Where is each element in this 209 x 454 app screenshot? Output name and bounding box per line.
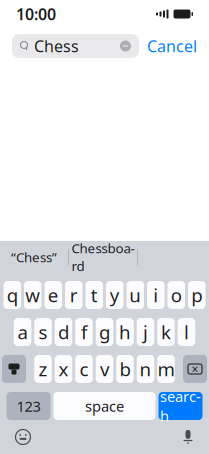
- button[interactable]: o: [167, 281, 185, 309]
- button[interactable]: i: [147, 281, 164, 309]
- button[interactable]: 123: [6, 392, 50, 420]
- button[interactable]: b: [116, 355, 134, 383]
- button[interactable]: k: [157, 318, 175, 346]
- button[interactable]: Emoji: [14, 428, 32, 446]
- staticText: Chess: [34, 35, 79, 57]
- button[interactable]: t: [85, 281, 103, 309]
- button[interactable]: l: [178, 318, 195, 346]
- button[interactable]: space: [53, 392, 155, 420]
- button[interactable]: a: [14, 318, 31, 346]
- button[interactable]: g: [96, 318, 113, 346]
- button[interactable]: z: [34, 355, 52, 383]
- staticText: y: [110, 283, 120, 307]
- staticText: Cancel: [147, 35, 197, 57]
- staticText: e: [48, 283, 59, 307]
- button[interactable]: Shift: [2, 355, 26, 383]
- staticText: h: [119, 320, 131, 344]
- button[interactable]: search: [158, 392, 202, 420]
- button[interactable]: q: [3, 281, 21, 309]
- staticText: z: [38, 357, 47, 381]
- staticText: l: [184, 320, 189, 344]
- staticText: o: [171, 283, 182, 307]
- staticText: k: [161, 320, 171, 344]
- staticText: 123: [16, 396, 40, 416]
- button[interactable]: u: [126, 281, 144, 309]
- button[interactable]: n: [137, 355, 154, 383]
- staticText: a: [17, 320, 27, 344]
- staticText: v: [100, 357, 109, 381]
- staticText: t: [91, 283, 98, 307]
- button[interactable]: r: [65, 281, 82, 309]
- staticText: m: [157, 357, 174, 381]
- button[interactable]: d: [55, 318, 72, 346]
- button[interactable]: p: [188, 281, 205, 309]
- staticText: w: [25, 283, 40, 307]
- button[interactable]: c: [75, 355, 93, 383]
- staticText: ×: [191, 361, 198, 377]
- button[interactable]: “Chess”: [0, 245, 68, 269]
- staticText: Chessboard: [71, 239, 134, 275]
- button[interactable]: h: [116, 318, 134, 346]
- staticText: u: [129, 283, 141, 307]
- staticText: b: [119, 357, 130, 381]
- staticText: g: [99, 320, 110, 344]
- staticText: space: [85, 396, 124, 416]
- staticText: f: [81, 320, 87, 344]
- button[interactable]: s: [34, 318, 52, 346]
- button[interactable]: Cancel: [147, 35, 197, 57]
- staticText: p: [191, 283, 202, 307]
- staticText: search: [160, 386, 201, 425]
- staticText: j: [143, 320, 148, 344]
- button[interactable]: m: [157, 355, 175, 383]
- button[interactable]: Chessboard: [69, 245, 137, 269]
- button[interactable]: y: [106, 281, 123, 309]
- staticText: 10:00: [16, 3, 56, 25]
- staticText: s: [38, 320, 47, 344]
- button[interactable]: j: [137, 318, 154, 346]
- button[interactable]: f: [75, 318, 93, 346]
- staticText: c: [79, 357, 88, 381]
- button[interactable]: w: [24, 281, 41, 309]
- staticText: r: [70, 283, 78, 307]
- staticText: “Chess”: [11, 248, 57, 266]
- button[interactable]: Dictation: [181, 429, 195, 445]
- button[interactable]: e: [44, 281, 62, 309]
- staticText: d: [58, 320, 69, 344]
- staticText: i: [153, 283, 158, 307]
- staticText: x: [58, 357, 68, 381]
- button[interactable]: Clear text: [119, 39, 132, 52]
- staticText: n: [139, 357, 151, 381]
- button[interactable]: v: [96, 355, 113, 383]
- button[interactable]: x: [55, 355, 72, 383]
- staticText: q: [7, 283, 18, 307]
- button[interactable]: Delete: [183, 355, 207, 383]
